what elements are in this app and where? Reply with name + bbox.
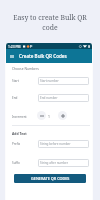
staticText: Start [12,79,19,83]
staticText: Prefix [12,142,21,146]
staticText: 1 [48,114,50,119]
staticText: String after number [40,161,69,165]
staticText: 1:23 PM [8,44,21,48]
staticText: End [12,96,18,100]
staticText: Increment [12,115,27,119]
staticText: Add Text [12,131,27,136]
button[interactable]: GENERATE QR CODES [14,174,86,183]
staticText: Start number [40,79,59,83]
button[interactable]: Open navigation menu [8,53,15,60]
button[interactable]: Increase [58,111,67,120]
staticText: Create Bulk QR Codes [19,53,67,59]
button[interactable]: String before number [38,140,89,148]
staticText: Choose Numbers [12,66,39,70]
button[interactable]: String after number [38,159,89,167]
button[interactable]: Decrease [37,111,46,120]
staticText: Suffix [12,161,20,165]
staticText: End number [40,96,58,100]
button[interactable]: Start number [38,77,89,85]
staticText: String before number [40,142,71,146]
button[interactable]: End number [38,94,89,102]
staticText: GENERATE QR CODES [31,176,70,181]
staticText: Easy to create Bulk QR code [13,13,87,32]
